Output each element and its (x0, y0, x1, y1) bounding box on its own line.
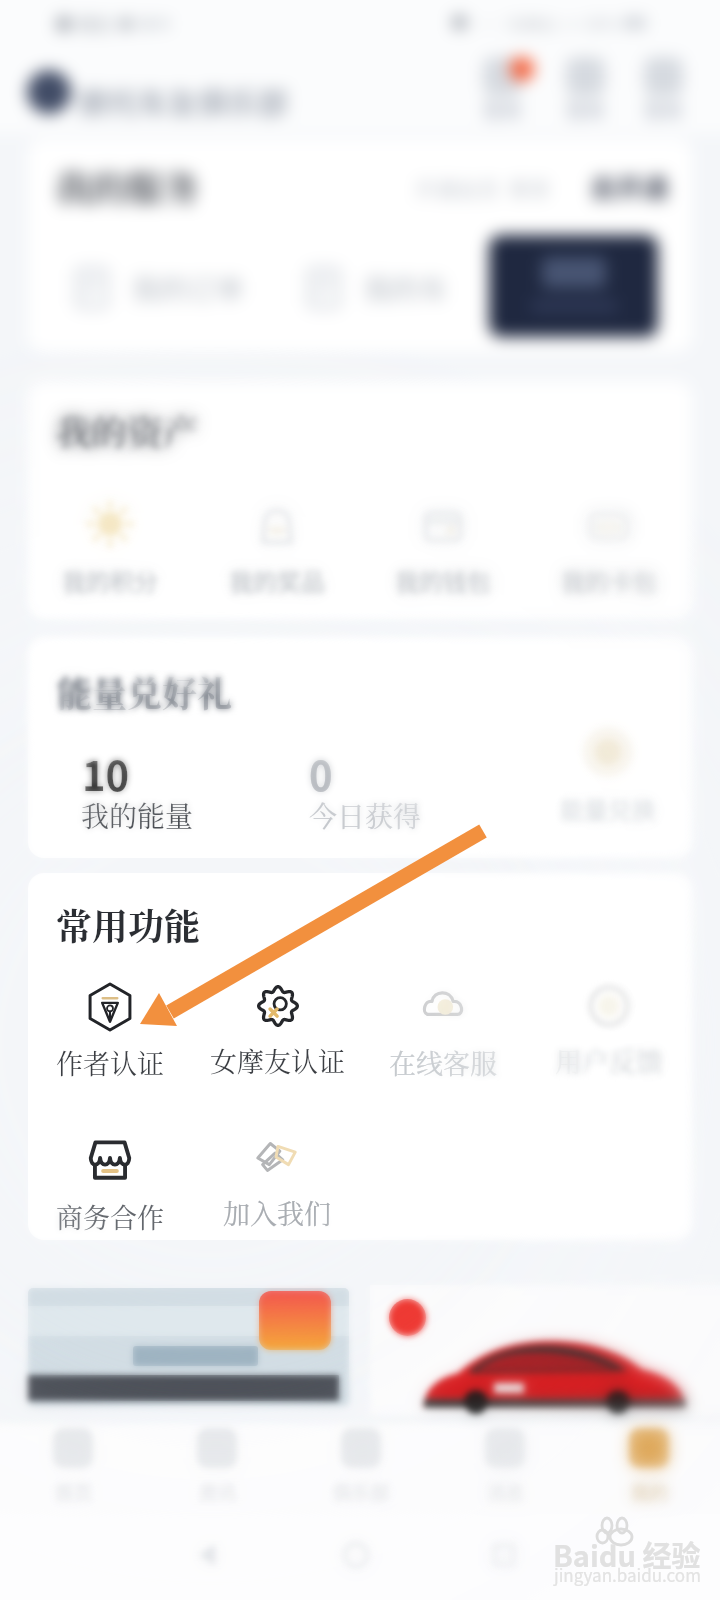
button[interactable]: Tab (443, 1428, 567, 1512)
button[interactable]: 加入我们 (194, 1132, 360, 1232)
button[interactable]: Asset (363, 497, 523, 605)
button[interactable]: Tab (155, 1428, 279, 1512)
button[interactable]: Header action (630, 52, 696, 132)
button[interactable]: Redeem (528, 727, 688, 835)
staticText: 我的资产 (55, 405, 200, 457)
button[interactable]: Asset (363, 497, 523, 605)
button[interactable]: 女摩友认证 (194, 984, 360, 1084)
button[interactable]: Asset (197, 497, 357, 605)
button[interactable]: Car banner (370, 1285, 720, 1415)
button[interactable]: Asset (529, 497, 689, 605)
button[interactable]: Tab (587, 1428, 711, 1512)
button[interactable]: Redeem (528, 727, 688, 835)
button[interactable]: Back (180, 1527, 236, 1583)
button[interactable]: 用户反馈 (526, 984, 692, 1084)
button[interactable]: Tab (443, 1428, 567, 1512)
button[interactable]: 我的车 (304, 262, 449, 314)
staticText: 加入我们 (223, 1193, 331, 1232)
button[interactable]: 在线客服 (360, 984, 526, 1084)
button[interactable]: Promotion banner (28, 1288, 349, 1406)
button[interactable]: Back (180, 1527, 236, 1583)
button[interactable]: 女摩友认证 (194, 984, 360, 1084)
button[interactable]: Avatar (27, 70, 71, 114)
button[interactable]: Back (180, 1527, 236, 1583)
button[interactable]: Tab (155, 1428, 279, 1512)
button[interactable]: Tab (155, 1428, 279, 1512)
button[interactable]: 在线客服 (360, 984, 526, 1084)
button[interactable]: Tab (443, 1428, 567, 1512)
button[interactable]: Tab (11, 1428, 135, 1512)
button[interactable]: 作者认证 (28, 984, 193, 1084)
button[interactable]: 女摩友认证 (194, 984, 360, 1084)
staticText: 我的钱包 (395, 563, 491, 598)
button[interactable]: 用户反馈 (526, 984, 692, 1084)
staticText: 我的服务 (55, 161, 200, 213)
staticText: 首页 (54, 1478, 93, 1506)
button[interactable]: Avatar (27, 70, 71, 114)
button[interactable]: Header action (552, 52, 618, 132)
staticText: 我的能量 (81, 795, 194, 835)
button[interactable]: Header action (469, 52, 535, 132)
staticText: 我的积分 (62, 563, 158, 598)
button[interactable]: 我的订单 (72, 262, 245, 314)
staticText: 去开通 (590, 168, 669, 206)
button[interactable]: 在线客服 (360, 984, 526, 1084)
button[interactable]: Header action (552, 52, 618, 132)
button[interactable]: Asset (197, 497, 357, 605)
button[interactable]: 商务合作 (28, 1132, 193, 1232)
button[interactable]: Asset (197, 497, 357, 605)
button[interactable]: 用户反馈 (526, 984, 692, 1084)
button[interactable]: Tab (11, 1428, 135, 1512)
button[interactable]: 商务合作 (28, 1132, 193, 1232)
button[interactable]: Promotion banner (28, 1288, 349, 1406)
button[interactable]: Asset (30, 497, 190, 605)
button[interactable]: Redeem (528, 727, 688, 835)
button[interactable]: Membership card (489, 235, 658, 337)
button[interactable]: Car banner (370, 1285, 720, 1415)
button[interactable]: Asset (30, 497, 190, 605)
button[interactable]: 加入我们 (194, 1132, 360, 1232)
button[interactable]: Header action (630, 52, 696, 132)
button[interactable]: 作者认证 (28, 984, 193, 1084)
button[interactable]: 商务合作 (28, 1132, 193, 1232)
button[interactable]: Header action (552, 52, 618, 132)
button[interactable]: Header action (469, 52, 535, 132)
button[interactable]: Header action (630, 52, 696, 132)
button[interactable]: Tab (587, 1428, 711, 1512)
button[interactable]: Asset (529, 497, 689, 605)
staticText: 商务合作 (56, 1197, 164, 1232)
button[interactable]: Asset (30, 497, 190, 605)
button[interactable]: Tab (11, 1428, 135, 1512)
button[interactable]: Tab (299, 1428, 423, 1512)
staticText: 俱乐部 (332, 1478, 390, 1506)
button[interactable]: Car banner (370, 1285, 720, 1415)
staticText: Baidu 经验 (553, 1533, 701, 1575)
staticText: 能量兑换 (560, 791, 656, 826)
button[interactable]: Avatar (27, 70, 71, 114)
button[interactable]: Asset (363, 497, 523, 605)
button[interactable]: Tab (299, 1428, 423, 1512)
button[interactable]: Membership card (489, 235, 658, 337)
button[interactable]: 我的车 (304, 262, 449, 314)
button[interactable]: Asset (529, 497, 689, 605)
staticText: 我的车 (364, 268, 449, 309)
button[interactable]: 我的订单 (72, 262, 245, 314)
button[interactable]: 我的订单 (72, 262, 245, 314)
button[interactable]: 加入我们 (194, 1132, 360, 1232)
button[interactable]: Header action (469, 52, 535, 132)
staticText: 能量兑好礼 (57, 667, 233, 717)
button[interactable]: Tab (299, 1428, 423, 1512)
button[interactable]: 作者认证 (28, 984, 193, 1084)
button[interactable]: Promotion banner (28, 1288, 349, 1406)
button[interactable]: Membership card (489, 235, 658, 337)
button[interactable]: Tab (587, 1428, 711, 1512)
staticText: 常用功能 (56, 899, 201, 951)
button[interactable]: 我的车 (304, 262, 449, 314)
